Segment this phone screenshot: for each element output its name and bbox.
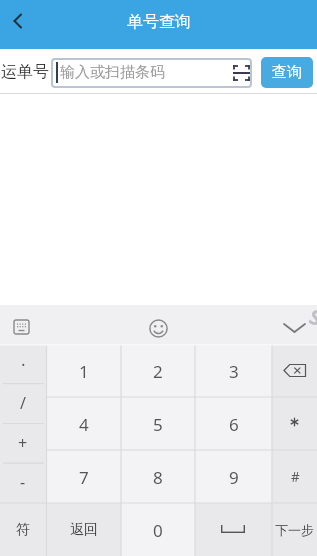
staticText: 0 <box>153 519 163 542</box>
staticText: 下一步 <box>275 522 314 538</box>
staticText: - <box>20 471 26 493</box>
staticText: 返回 <box>70 521 98 539</box>
staticText: 6 <box>229 413 239 436</box>
staticText: + <box>18 432 28 454</box>
staticText: 2 <box>153 360 163 383</box>
staticText: # <box>291 468 300 486</box>
staticText: 9 <box>229 466 239 489</box>
staticText: 单号查询 <box>127 12 191 32</box>
staticText: 运单号 <box>1 62 49 82</box>
staticText: 8 <box>153 466 163 489</box>
staticText: 3 <box>229 360 239 383</box>
staticText: 1 <box>79 360 89 383</box>
staticText: 5 <box>153 413 163 436</box>
staticText: 4 <box>79 413 89 436</box>
staticText: 7 <box>79 466 89 489</box>
staticText: 查询 <box>272 63 302 82</box>
staticText: 输入或扫描条码 <box>60 63 165 82</box>
staticText: 符 <box>16 521 30 539</box>
staticText: · <box>21 353 26 376</box>
staticText: S <box>306 303 317 331</box>
staticText: / <box>20 392 26 414</box>
